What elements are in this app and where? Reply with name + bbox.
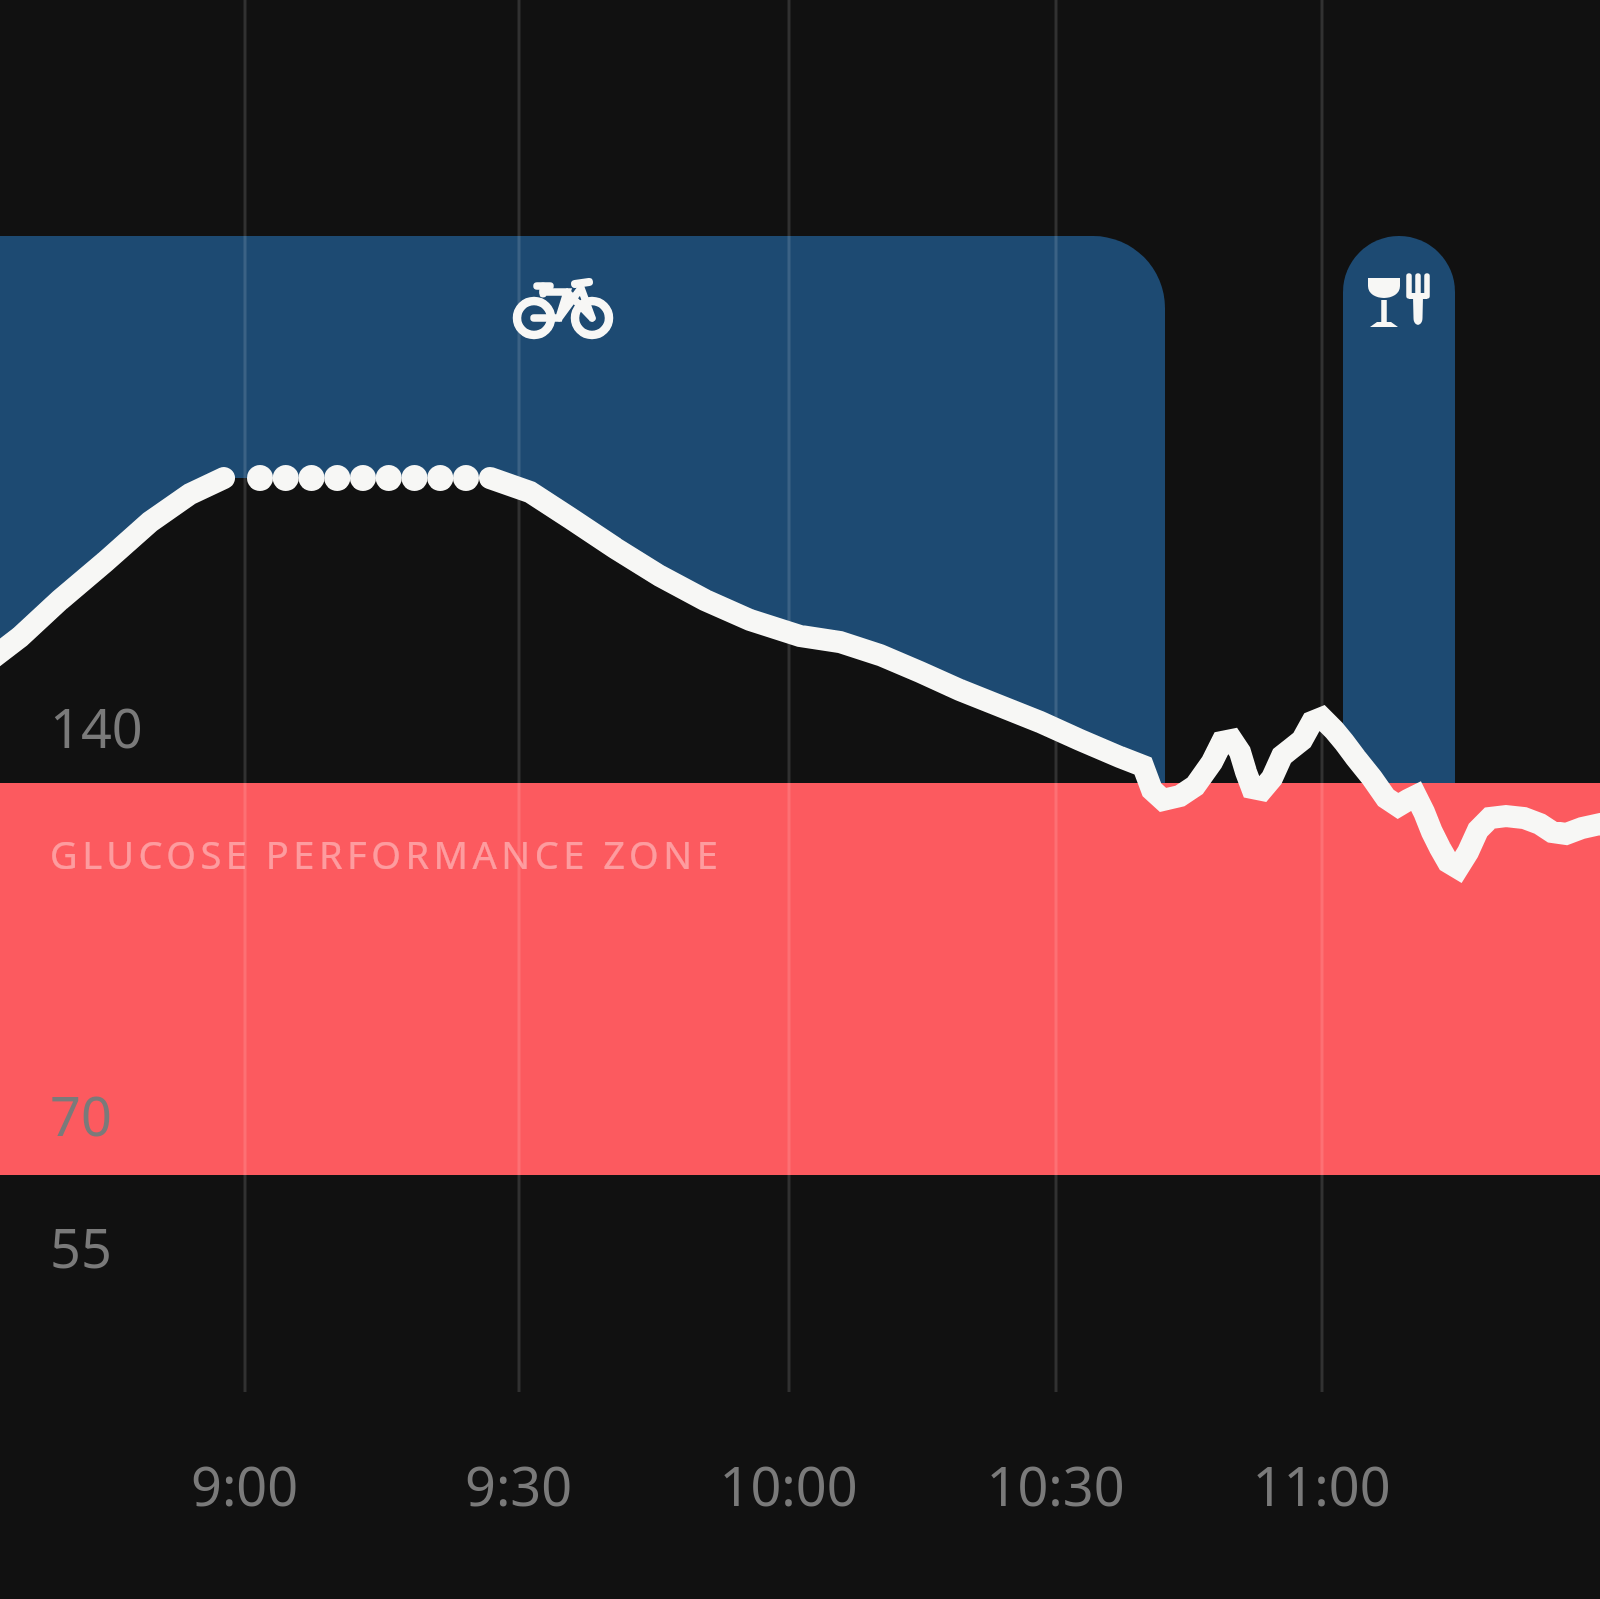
- button[interactable]: Glucose performance chart: [0, 0, 1600, 1599]
